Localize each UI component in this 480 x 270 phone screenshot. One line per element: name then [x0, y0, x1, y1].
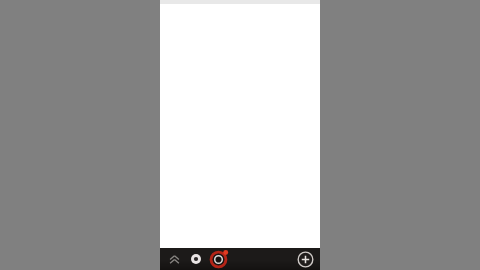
- button[interactable]: Expand: [166, 251, 182, 267]
- button[interactable]: Add: [295, 249, 315, 269]
- button[interactable]: Stickers: [189, 252, 203, 266]
- button[interactable]: Camera: [209, 250, 228, 269]
